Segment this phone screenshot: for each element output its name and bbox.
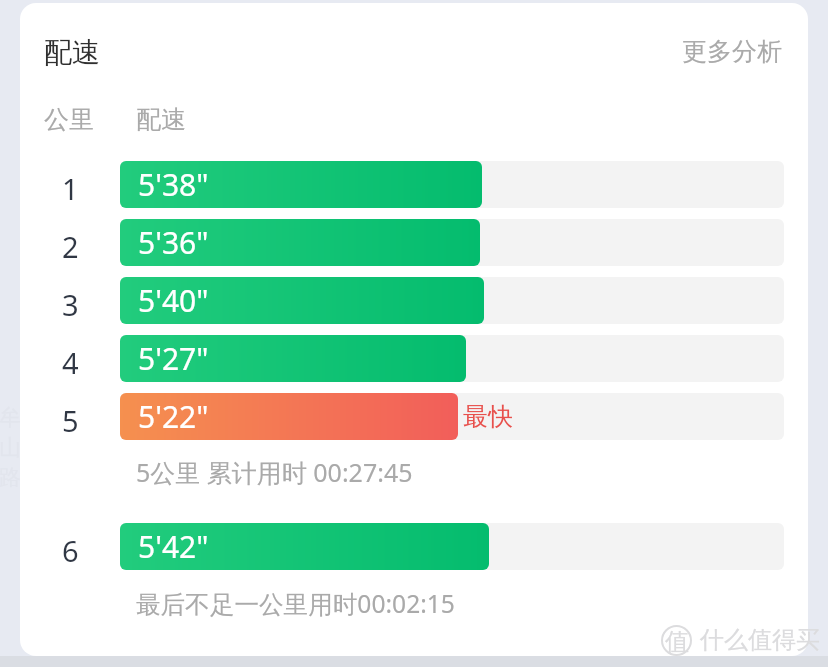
other: Watermark (661, 625, 692, 656)
staticText: 5'42" (138, 526, 209, 567)
staticText: 配速 (44, 35, 100, 70)
staticText: 6 (62, 531, 79, 570)
staticText: 1 (62, 169, 79, 208)
staticText: 值 (665, 627, 689, 657)
staticText: 4 (62, 343, 79, 382)
button[interactable]: 1 (34, 161, 784, 208)
button[interactable]: 6 (34, 523, 784, 570)
staticText: 5'38" (138, 164, 209, 205)
staticText: 什么值得买 (700, 625, 820, 655)
staticText: 5 (62, 401, 79, 440)
staticText: 3 (62, 285, 79, 324)
button[interactable]: 2 (34, 219, 784, 266)
staticText: 更多分析 (682, 36, 782, 67)
staticText: 5公里 累计用时 00:27:45 (136, 455, 413, 489)
button[interactable]: 5 (34, 393, 784, 440)
staticText: 最后不足一公里用时00:02:15 (136, 587, 455, 621)
staticText: 配速 (136, 104, 186, 135)
staticText: 5'40" (138, 280, 209, 321)
staticText: 5'36" (138, 222, 209, 263)
button[interactable]: 更多分析 (653, 28, 782, 74)
staticText: 2 (62, 227, 79, 266)
button[interactable]: 3 (34, 277, 784, 324)
staticText: 5'22" (138, 396, 209, 437)
staticText: 牟 山 路 (0, 404, 21, 492)
button[interactable]: 4 (34, 335, 784, 382)
staticText: 5'27" (138, 338, 209, 379)
staticText: 公里 (44, 104, 94, 135)
staticText: 最快 (463, 401, 513, 432)
